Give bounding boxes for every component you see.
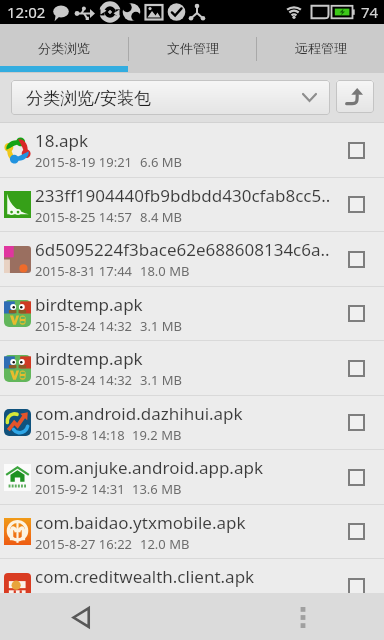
staticText: 远程管理 (295, 40, 347, 56)
staticText: 2015-9-2 14:31 (35, 480, 125, 498)
button[interactable]: com.creditwealth.client.apk (0, 559, 384, 613)
button[interactable]: 分类浏览 (0, 24, 128, 73)
staticText: com.baidao.ytxmobile.apk (35, 511, 246, 534)
button[interactable]: More options (282, 596, 324, 638)
staticText: 12:02 (7, 2, 46, 22)
button[interactable]: Select file (336, 505, 376, 558)
button[interactable]: birdtemp.apk (0, 341, 384, 395)
staticText: 2015-8-19 19:21 (35, 153, 133, 171)
staticText: com.creditwealth.client.apk (35, 565, 255, 588)
button[interactable]: Select file (336, 232, 376, 286)
button[interactable]: com.android.dazhihui.apk (0, 396, 384, 449)
staticText: 9.8 MB (140, 589, 182, 607)
button[interactable]: Up one level (336, 80, 374, 113)
button[interactable]: com.baidao.ytxmobile.apk (0, 505, 384, 558)
staticText: 分类浏览/安装包 (26, 86, 152, 109)
button[interactable]: Select file (336, 178, 376, 231)
staticText: com.android.dazhihui.apk (35, 402, 243, 425)
staticText: 2015-8-24 14:32 (35, 371, 133, 389)
button[interactable]: 远程管理 (257, 24, 384, 73)
staticText: birdtemp.apk (35, 293, 143, 316)
button[interactable]: Select file (336, 287, 376, 340)
button[interactable]: Select file (336, 559, 376, 613)
button[interactable]: Select file (336, 396, 376, 449)
staticText: 8.4 MB (140, 208, 182, 226)
staticText: 6d5095224f3bace62e688608134c6a.. (35, 238, 330, 261)
staticText: 2015-8-25 14:57 (35, 208, 133, 226)
staticText: com.anjuke.android.app.apk (35, 456, 263, 479)
button[interactable]: 6d5095224f3bace62e688608134c6a.. (0, 232, 384, 286)
button[interactable]: Select file (336, 341, 376, 395)
staticText: 74 (361, 2, 379, 22)
staticText: 233ff1904440fb9bdbdd430cfab8cc5.. (35, 184, 331, 207)
staticText: 2015-8-27 16:22 (35, 535, 133, 553)
staticText: 18.apk (35, 129, 89, 152)
button[interactable]: 18.apk (0, 123, 384, 177)
staticText: birdtemp.apk (35, 347, 143, 370)
button[interactable]: Back (60, 596, 102, 638)
staticText: 2015-8-26 11:08 (35, 589, 133, 607)
staticText: 12.0 MB (140, 535, 190, 553)
staticText: 文件管理 (167, 40, 219, 56)
button[interactable]: 文件管理 (129, 24, 256, 73)
staticText: 13.6 MB (132, 480, 182, 498)
staticText: 6.6 MB (140, 153, 182, 171)
staticText: 2015-8-24 14:32 (35, 317, 133, 335)
staticText: 3.1 MB (140, 317, 182, 335)
staticText: 分类浏览 (38, 40, 90, 56)
button[interactable]: Select file (336, 450, 376, 504)
staticText: 19.2 MB (132, 426, 182, 444)
button[interactable]: 233ff1904440fb9bdbdd430cfab8cc5.. (0, 178, 384, 231)
button[interactable]: birdtemp.apk (0, 287, 384, 340)
staticText: 2015-8-31 17:44 (35, 262, 133, 280)
staticText: 2015-9-8 14:18 (35, 426, 125, 444)
staticText: 18.0 MB (140, 262, 190, 280)
button[interactable]: Select file (336, 123, 376, 177)
button[interactable]: 分类浏览/安装包 (11, 80, 330, 115)
staticText: 3.1 MB (140, 371, 182, 389)
button[interactable]: com.anjuke.android.app.apk (0, 450, 384, 504)
